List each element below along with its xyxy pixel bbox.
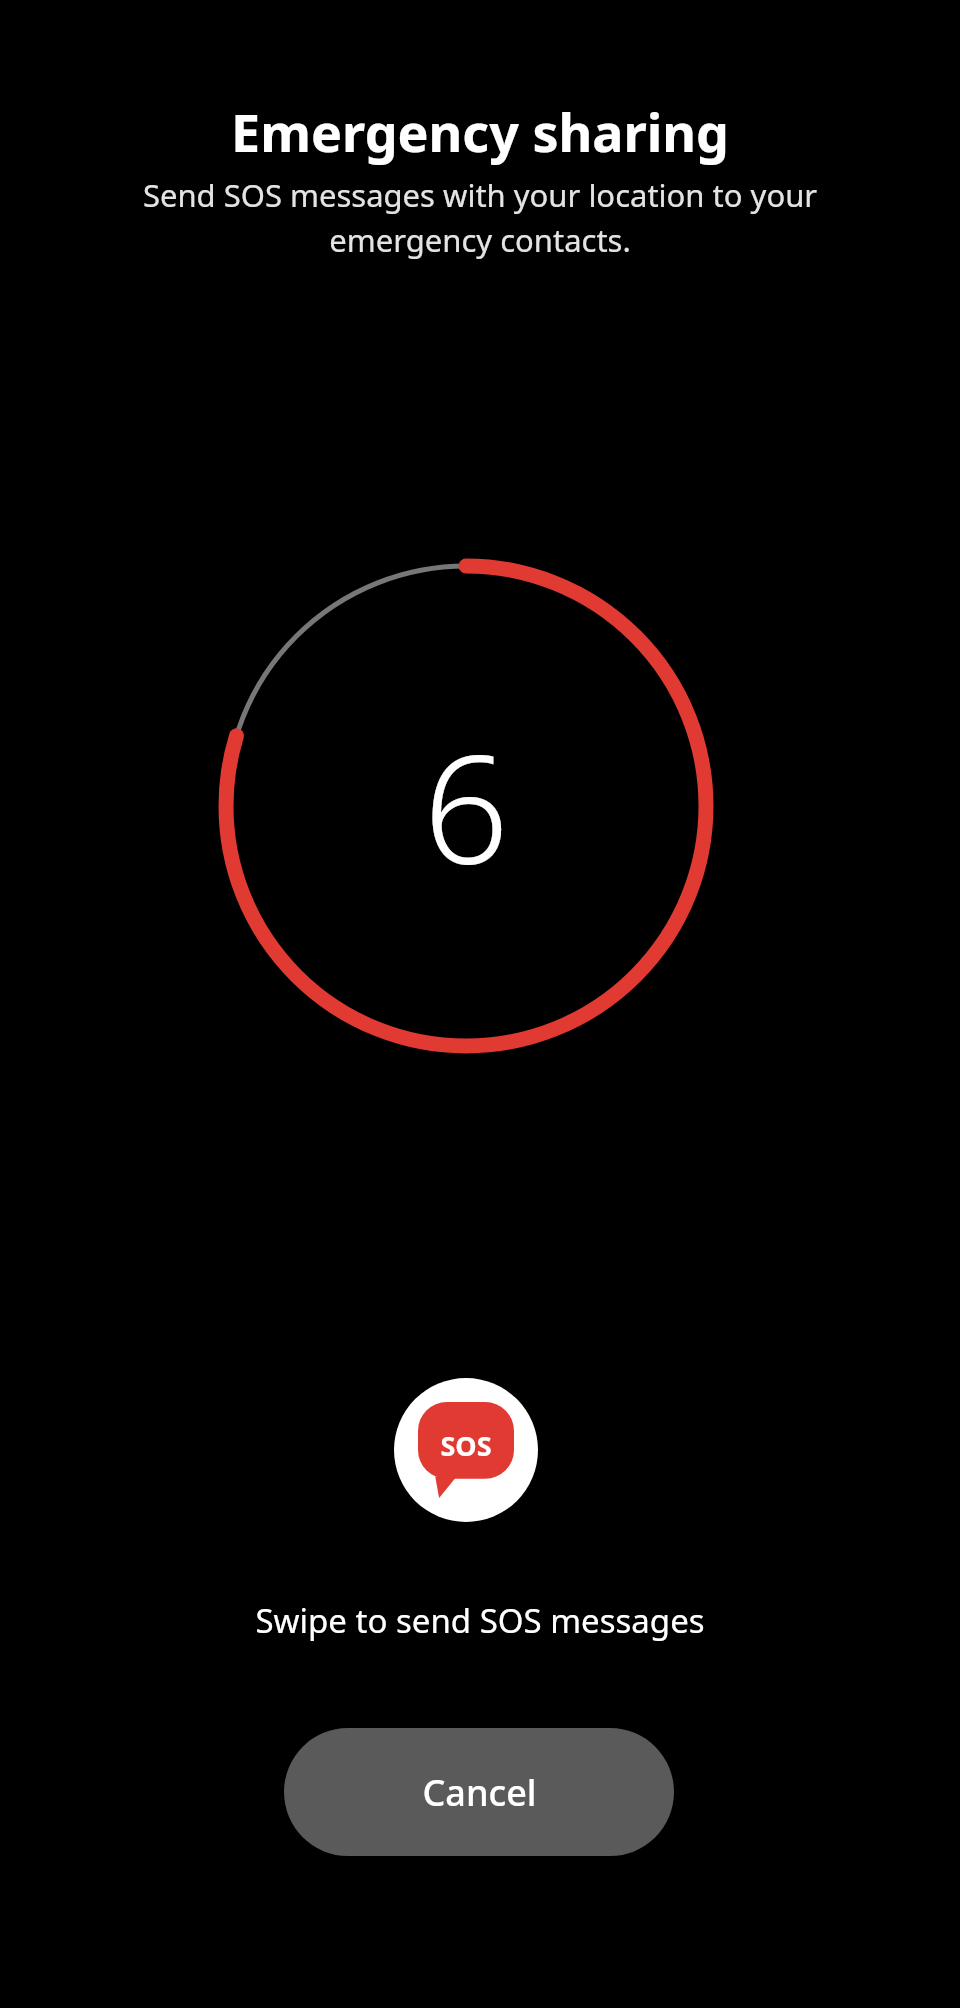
staticText: Swipe to send SOS messages <box>0 1598 960 1643</box>
staticText: SOS <box>440 1427 492 1464</box>
button[interactable]: Cancel <box>284 1728 674 1856</box>
staticText: Cancel <box>422 1768 537 1817</box>
staticText: Send SOS messages with your location to … <box>80 174 880 261</box>
staticText: Emergency sharing <box>0 96 960 167</box>
button[interactable]: Send SOS messages <box>394 1378 538 1522</box>
staticText: 6 <box>423 704 509 908</box>
